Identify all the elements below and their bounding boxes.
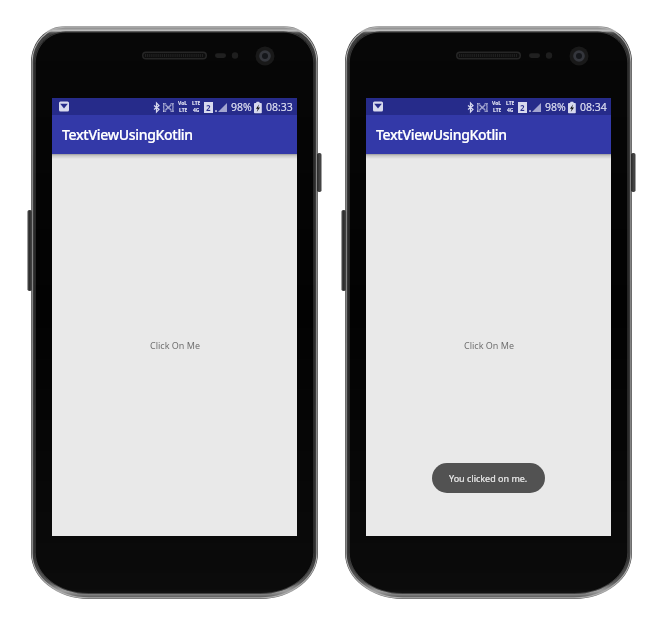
staticText: VoL xyxy=(492,100,502,107)
staticText: Click On Me xyxy=(464,339,514,351)
staticText: 08:33 xyxy=(266,100,293,114)
staticText: 98% xyxy=(231,100,252,114)
staticText: LTE xyxy=(506,100,515,107)
staticText: Click On Me xyxy=(150,339,200,351)
staticText: You clicked on me. xyxy=(449,472,528,484)
staticText: 2 xyxy=(520,102,525,113)
staticText: TextViewUsingKotlin xyxy=(376,125,507,144)
button[interactable]: Click On Me xyxy=(150,339,200,351)
staticText: TextViewUsingKotlin xyxy=(62,125,193,144)
staticText: 4G xyxy=(193,107,200,114)
staticText: 2 xyxy=(206,102,211,113)
staticText: 08:34 xyxy=(580,100,607,114)
staticText: VoL xyxy=(178,100,188,107)
staticText: 4G xyxy=(507,107,514,114)
staticText: 98% xyxy=(545,100,566,114)
button[interactable]: Click On Me xyxy=(464,339,514,351)
staticText: LTE xyxy=(192,100,201,107)
staticText: LTE xyxy=(493,107,502,114)
staticText: LTE xyxy=(179,107,188,114)
